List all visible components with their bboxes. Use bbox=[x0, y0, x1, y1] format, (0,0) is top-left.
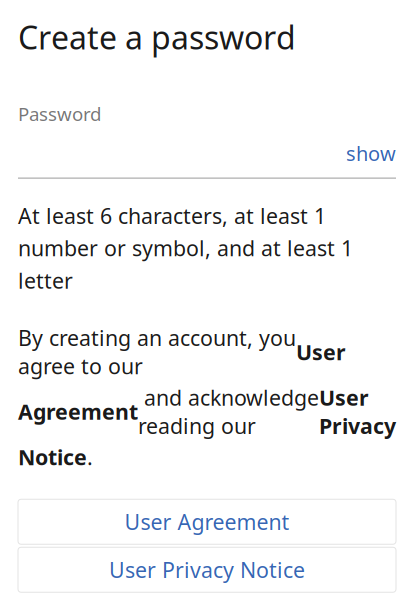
button[interactable]: User Agreement bbox=[18, 499, 396, 544]
button[interactable]: show bbox=[346, 138, 396, 169]
staticText: At least 6 characters, at least 1 number… bbox=[18, 202, 353, 295]
staticText: Agreement bbox=[18, 397, 138, 426]
button[interactable]: User Privacy Notice bbox=[18, 547, 396, 592]
staticText: User bbox=[296, 338, 346, 366]
staticText: Notice bbox=[18, 443, 87, 471]
staticText: Create a password bbox=[18, 16, 296, 58]
staticText: . bbox=[87, 443, 93, 471]
staticText: Password bbox=[18, 101, 101, 126]
staticText: show bbox=[346, 140, 396, 167]
staticText: and acknowledge reading our bbox=[138, 383, 319, 440]
staticText: By creating an account, you agree to our bbox=[18, 324, 296, 380]
staticText: User Privacy bbox=[319, 383, 396, 440]
staticText: User Privacy Notice bbox=[109, 556, 305, 584]
staticText: User Agreement bbox=[124, 508, 289, 536]
